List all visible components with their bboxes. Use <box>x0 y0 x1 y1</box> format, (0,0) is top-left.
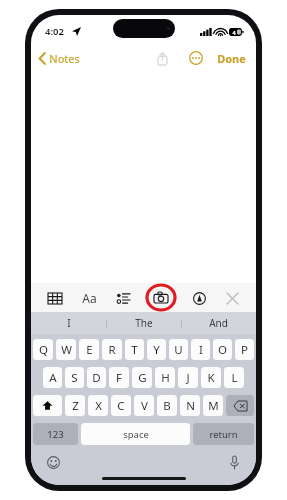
staticText: X <box>95 398 102 414</box>
staticText: N <box>186 398 195 414</box>
staticText: T <box>131 342 138 358</box>
staticText: Notes <box>49 51 80 66</box>
staticText: P <box>241 342 248 358</box>
button[interactable]: L <box>224 367 244 388</box>
button[interactable]: space <box>81 423 190 445</box>
button[interactable]: B <box>157 395 177 416</box>
button[interactable]: Table <box>45 288 65 308</box>
staticText: And <box>209 316 228 330</box>
staticText: D <box>92 370 101 386</box>
staticText: Done <box>217 51 246 66</box>
staticText: H <box>161 370 170 386</box>
staticText: O <box>218 342 227 358</box>
staticText: W <box>61 342 72 358</box>
staticText: Y <box>153 342 160 358</box>
button[interactable]: N <box>180 395 200 416</box>
button[interactable]: T <box>125 339 144 360</box>
button[interactable]: S <box>65 367 84 388</box>
staticText: I <box>67 316 71 330</box>
staticText: Aa <box>82 290 97 306</box>
button[interactable]: H <box>155 367 175 388</box>
button[interactable]: Dictation <box>226 454 242 470</box>
button[interactable]: I <box>191 339 210 360</box>
button[interactable]: K <box>201 367 221 388</box>
staticText: 123 <box>47 428 64 441</box>
staticText: M <box>208 398 219 414</box>
staticText: L <box>231 370 238 386</box>
button[interactable]: V <box>134 395 154 416</box>
staticText: B <box>163 398 171 414</box>
staticText: I <box>199 342 203 358</box>
button[interactable]: The <box>106 312 181 334</box>
staticText: The <box>135 316 153 330</box>
staticText: space <box>123 428 149 441</box>
button[interactable]: P <box>235 339 254 360</box>
button[interactable]: D <box>87 367 106 388</box>
button[interactable]: R <box>102 339 122 360</box>
staticText: K <box>207 370 215 386</box>
staticText: G <box>138 370 147 386</box>
staticText: J <box>186 370 190 386</box>
button[interactable]: I <box>31 312 106 334</box>
button[interactable]: And <box>181 312 256 334</box>
button[interactable]: Close <box>222 288 242 308</box>
button[interactable]: 123 <box>33 423 78 445</box>
button[interactable]: O <box>213 339 232 360</box>
button[interactable]: Aa <box>78 287 100 309</box>
staticText: 4:02 <box>45 25 64 38</box>
button[interactable]: Checklist <box>113 288 133 308</box>
button[interactable]: F <box>109 367 129 388</box>
staticText: E <box>86 342 93 358</box>
staticText: V <box>141 398 148 414</box>
button[interactable]: Markup <box>189 288 209 308</box>
button[interactable]: return <box>193 423 254 445</box>
button[interactable]: E <box>79 339 99 360</box>
staticText: Z <box>72 398 79 414</box>
staticText: 4 <box>232 29 236 36</box>
button[interactable]: Share <box>152 48 172 68</box>
staticText: U <box>174 342 183 358</box>
button[interactable]: Backspace <box>226 395 254 416</box>
button[interactable]: X <box>88 395 108 416</box>
button[interactable]: A <box>43 367 62 388</box>
button[interactable]: G <box>132 367 152 388</box>
button[interactable]: More options <box>186 48 206 68</box>
staticText: A <box>49 370 57 386</box>
button[interactable]: W <box>56 339 76 360</box>
button[interactable]: J <box>178 367 198 388</box>
button[interactable]: Q <box>33 339 53 360</box>
button[interactable]: Y <box>147 339 166 360</box>
staticText: return <box>209 428 238 441</box>
button[interactable]: C <box>111 395 131 416</box>
button[interactable]: M <box>203 395 223 416</box>
button[interactable]: Camera <box>146 284 176 311</box>
button[interactable]: Emoji <box>45 454 61 470</box>
staticText: Q <box>39 342 48 358</box>
button[interactable]: Shift <box>33 395 62 416</box>
button[interactable]: Done <box>217 51 246 66</box>
staticText: S <box>71 370 78 386</box>
button[interactable]: Notes <box>39 51 80 66</box>
staticText: R <box>108 342 116 358</box>
staticText: F <box>116 370 122 386</box>
staticText: C <box>117 398 125 414</box>
button[interactable]: U <box>169 339 188 360</box>
button[interactable]: Z <box>65 395 85 416</box>
